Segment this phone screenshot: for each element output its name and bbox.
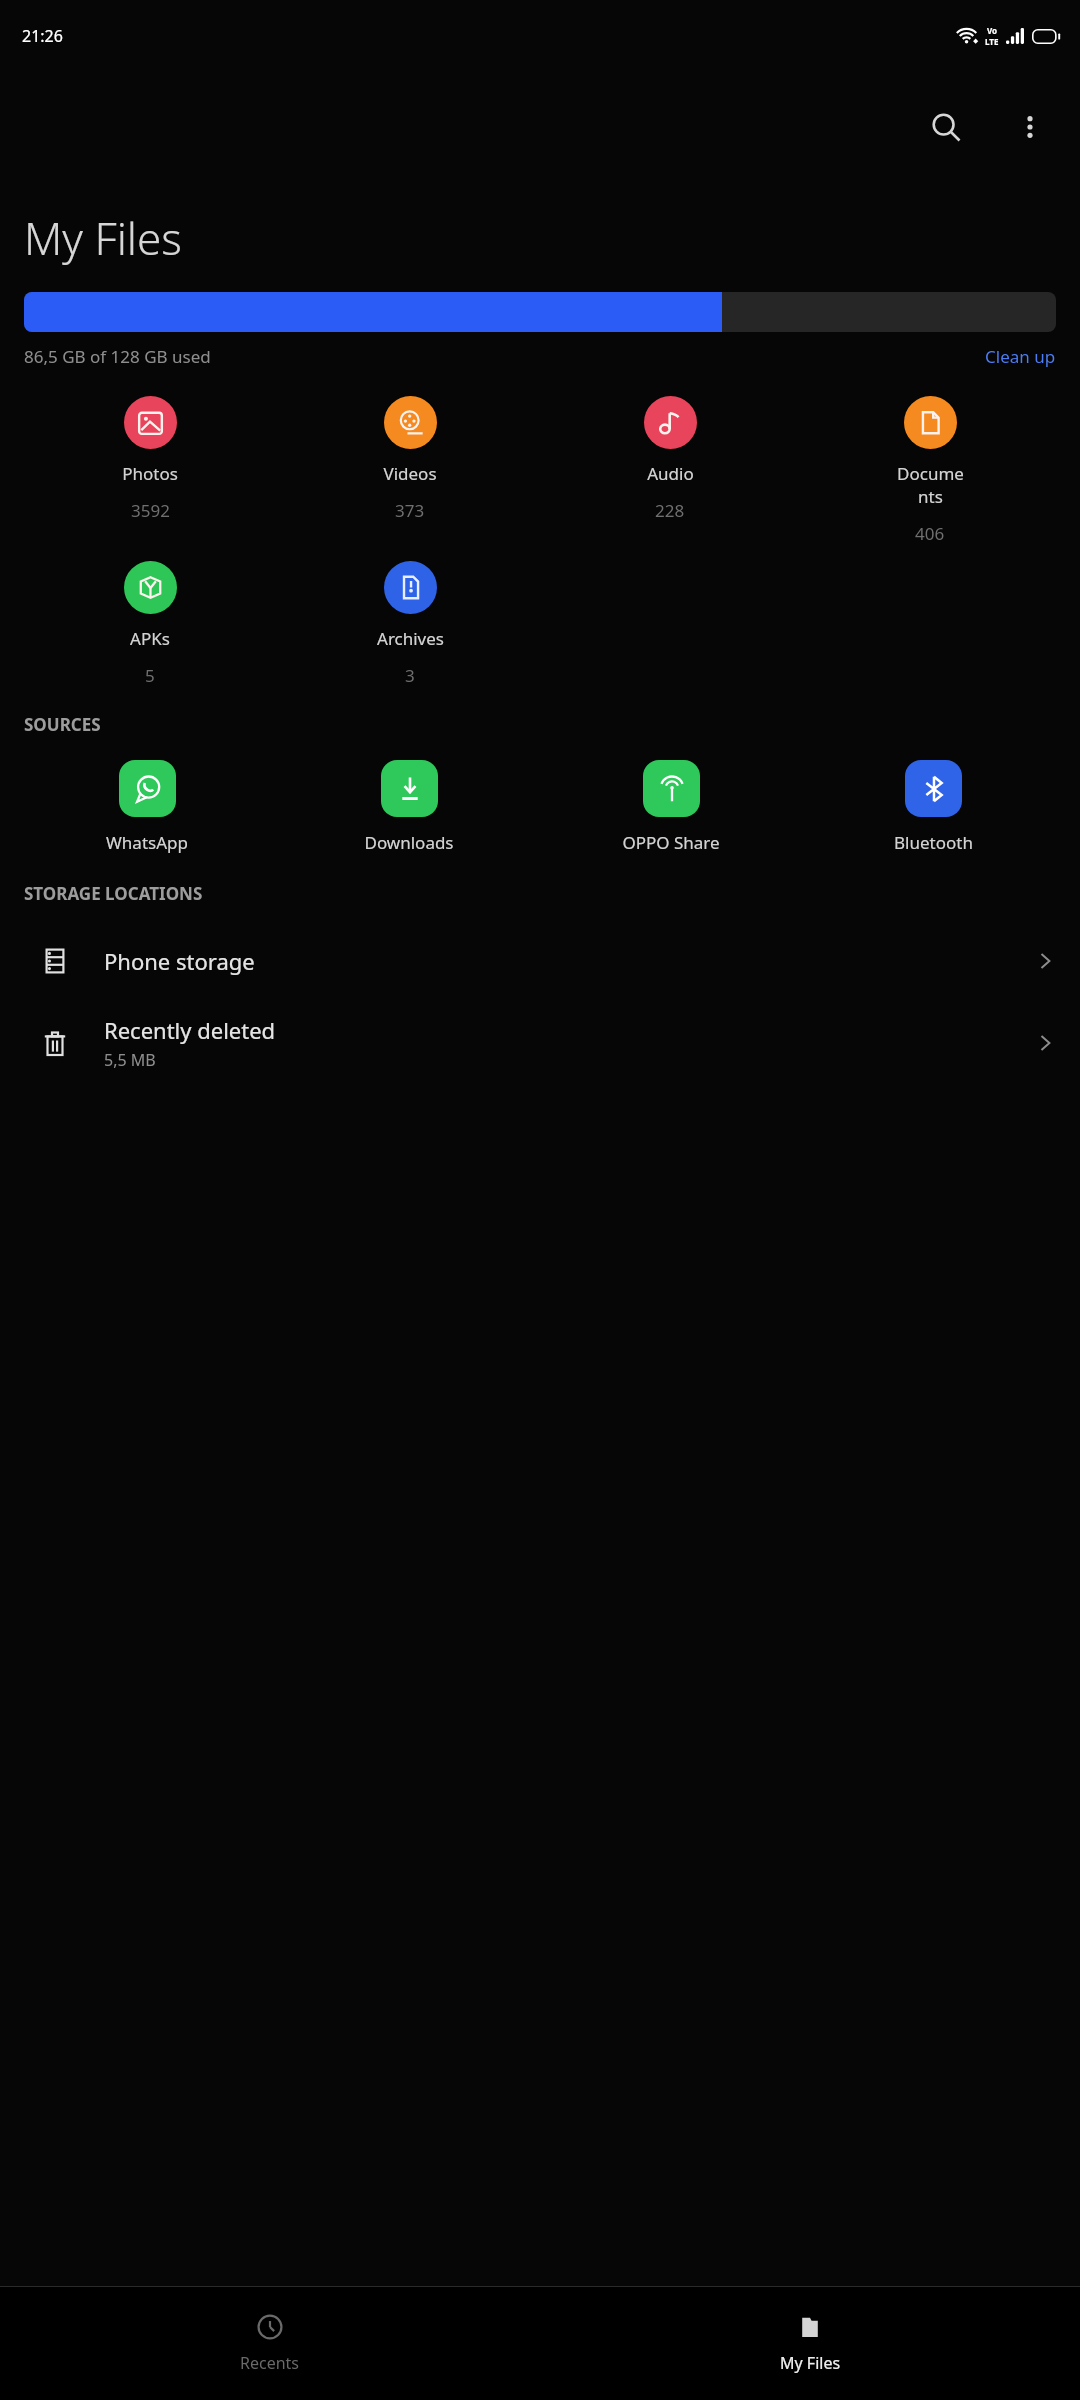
staticText: Recents <box>240 2352 300 2374</box>
staticText: 228 <box>655 499 685 522</box>
button[interactable]: Audio <box>540 396 800 522</box>
staticText: Docume nts <box>897 462 964 508</box>
button[interactable]: Videos <box>280 396 540 522</box>
button[interactable]: OPPO Share <box>540 760 802 854</box>
staticText: WhatsApp <box>106 831 188 854</box>
staticText: Photos <box>122 462 178 485</box>
staticText: 86,5 GB of 128 GB used <box>24 345 211 368</box>
staticText: Archives <box>377 627 444 650</box>
staticText: Bluetooth <box>894 831 973 854</box>
button[interactable]: Recently deleted <box>0 999 1080 1087</box>
button[interactable]: Docume nts <box>800 396 1060 545</box>
button[interactable]: My Files <box>540 2287 1080 2400</box>
staticText: 406 <box>915 522 945 545</box>
button[interactable] <box>24 292 1056 332</box>
staticText: STORAGE LOCATIONS <box>24 882 203 905</box>
button[interactable]: Photos <box>20 396 280 522</box>
staticText: 3 <box>405 664 415 687</box>
staticText: Videos <box>383 462 437 485</box>
staticText: 5,5 MB <box>104 1049 156 1071</box>
button[interactable]: Downloads <box>278 760 540 854</box>
button[interactable]: More options <box>998 95 1062 159</box>
button[interactable]: Bluetooth <box>802 760 1064 854</box>
button[interactable]: WhatsApp <box>16 760 278 854</box>
staticText: Recently deleted <box>104 1015 276 1045</box>
staticText: Audio <box>647 462 694 485</box>
staticText: My Files <box>24 208 182 268</box>
button[interactable]: APKs <box>20 561 280 687</box>
button[interactable]: Recents <box>0 2287 540 2400</box>
staticText: SOURCES <box>24 713 101 736</box>
staticText: 5 <box>145 664 155 687</box>
button[interactable]: Phone storage <box>0 923 1080 999</box>
staticText: OPPO Share <box>622 831 720 854</box>
staticText: 21:26 <box>22 25 63 47</box>
staticText: Downloads <box>364 831 454 854</box>
staticText: Vo <box>987 25 998 36</box>
staticText: 3592 <box>131 499 170 522</box>
staticText: 373 <box>395 499 425 522</box>
staticText: Phone storage <box>104 946 255 976</box>
staticText: My Files <box>780 2352 841 2374</box>
button[interactable]: Clean up <box>985 345 1056 368</box>
button[interactable]: Search <box>914 95 978 159</box>
staticText: LTE <box>985 36 999 47</box>
staticText: Clean up <box>985 345 1056 368</box>
button[interactable]: Archives <box>280 561 540 687</box>
staticText: APKs <box>130 627 170 650</box>
